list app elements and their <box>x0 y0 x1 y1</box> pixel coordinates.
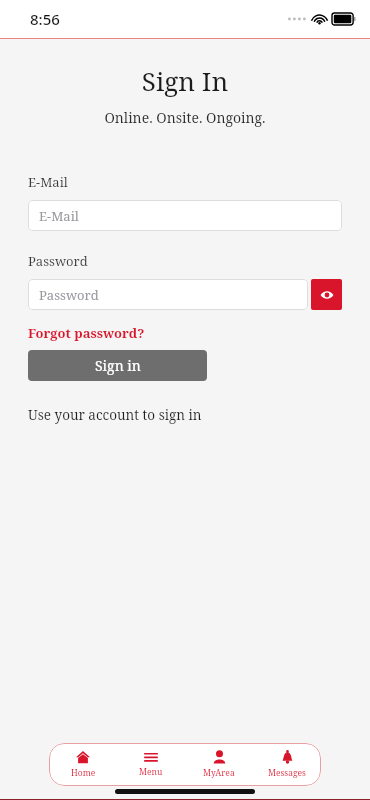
staticText: Home <box>71 767 96 779</box>
staticText: MyArea <box>203 767 235 779</box>
button[interactable]: Home <box>49 743 117 786</box>
staticText: Menu <box>139 766 163 778</box>
button[interactable]: MyArea <box>185 743 253 786</box>
button[interactable]: E-Mail <box>28 200 342 231</box>
button[interactable]: Messages <box>253 743 321 786</box>
button[interactable]: Show password <box>311 279 342 310</box>
staticText: Password <box>39 286 99 304</box>
button[interactable]: Forgot password? <box>28 324 145 342</box>
staticText: Sign in <box>95 356 141 375</box>
staticText: E-Mail <box>39 207 79 225</box>
staticText: Messages <box>268 767 306 779</box>
staticText: Use your account to sign in <box>28 406 202 424</box>
button[interactable]: Menu <box>117 743 185 786</box>
staticText: Password <box>28 252 88 270</box>
button[interactable]: Sign in <box>28 350 207 381</box>
button[interactable]: Password <box>28 279 308 310</box>
staticText: Sign In <box>0 63 370 98</box>
staticText: Forgot password? <box>28 324 145 342</box>
staticText: E-Mail <box>28 173 68 191</box>
staticText: Online. Onsite. Ongoing. <box>0 108 370 127</box>
staticText: 8:56 <box>30 9 60 29</box>
